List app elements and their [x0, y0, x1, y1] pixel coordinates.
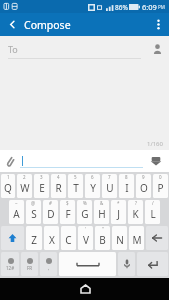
button[interactable]: FR — [21, 252, 38, 276]
staticText: @ — [31, 200, 36, 206]
button[interactable]: Z — [26, 226, 42, 250]
button[interactable]: ' — [78, 226, 93, 250]
button[interactable]: C — [61, 226, 76, 250]
staticText: 7 — [108, 174, 111, 180]
staticText: D — [47, 207, 55, 221]
staticText: H — [98, 207, 106, 221]
staticText: $ — [66, 200, 69, 206]
button[interactable]: M — [129, 226, 144, 250]
staticText: / — [152, 200, 154, 206]
staticText: * — [117, 200, 120, 206]
staticText: Q — [4, 181, 12, 195]
staticText: W — [20, 181, 30, 195]
staticText: B — [99, 233, 106, 247]
staticText: 9 — [142, 174, 145, 180]
button[interactable]: 1 — [1, 174, 15, 198]
button[interactable]: , — [40, 252, 57, 276]
staticText: 1/160 — [147, 140, 163, 148]
button[interactable]: More options — [147, 13, 169, 36]
button[interactable]: " — [95, 226, 110, 250]
button[interactable]: $ — [60, 200, 75, 224]
button[interactable]: Back — [0, 13, 24, 36]
staticText: # — [49, 200, 52, 206]
button[interactable]: Space — [59, 252, 116, 276]
staticText: C — [65, 233, 72, 247]
staticText: % — [83, 200, 87, 206]
staticText: V — [83, 233, 89, 247]
staticText: " — [102, 226, 104, 232]
staticText: K — [132, 207, 139, 221]
staticText: 0 — [159, 174, 162, 180]
staticText: ? — [135, 200, 137, 206]
button[interactable]: Send — [143, 150, 169, 172]
staticText: FR — [27, 265, 33, 271]
button[interactable]: Attach — [0, 150, 20, 172]
button[interactable]: 5 — [68, 174, 83, 198]
button[interactable]: & — [94, 200, 109, 224]
staticText: PM — [158, 4, 165, 10]
staticText: 4 — [57, 174, 60, 180]
button[interactable]: 2 — [17, 174, 32, 198]
staticText: 6:09 — [142, 2, 157, 12]
staticText: U — [106, 181, 114, 195]
button[interactable]: X — [44, 226, 59, 250]
staticText: M — [132, 233, 142, 247]
button[interactable]: * — [111, 200, 126, 224]
staticText: A — [13, 207, 20, 221]
staticText: 3 — [40, 174, 43, 180]
staticText: N — [116, 233, 124, 247]
staticText: P — [157, 181, 164, 195]
staticText: I — [125, 181, 129, 195]
button[interactable]: @ — [26, 200, 41, 224]
staticText: , — [48, 265, 50, 271]
staticText: O — [140, 181, 148, 195]
button[interactable]: / — [145, 200, 160, 224]
button[interactable]: Voice input — [118, 252, 135, 276]
button[interactable]: 4 — [51, 174, 66, 198]
button[interactable]: ? — [128, 200, 143, 224]
button[interactable]: 7 — [102, 174, 117, 198]
button[interactable]: N — [112, 226, 127, 250]
staticText: ' — [85, 226, 87, 232]
staticText: 5 — [74, 174, 77, 180]
button[interactable]: Backspace — [146, 226, 168, 250]
staticText: S — [31, 207, 37, 221]
staticText: R — [55, 181, 62, 195]
button[interactable]: Home — [74, 278, 96, 300]
staticText: 6 — [91, 174, 94, 180]
staticText: & — [100, 200, 104, 206]
staticText: J — [117, 207, 120, 221]
staticText: T — [73, 181, 79, 195]
staticText: 12# — [6, 265, 15, 271]
button[interactable]: ~ — [9, 200, 24, 224]
button[interactable]: # — [43, 200, 58, 224]
staticText: 1 — [7, 174, 10, 180]
button[interactable]: Add recipient — [145, 36, 169, 62]
staticText: G — [81, 207, 89, 221]
staticText: L — [150, 207, 156, 221]
button[interactable]: 12# — [1, 252, 19, 276]
staticText: Z — [31, 233, 37, 247]
button[interactable]: 3 — [34, 174, 49, 198]
staticText: ~ — [15, 200, 18, 206]
staticText: To — [8, 43, 18, 55]
button[interactable]: Shift — [1, 226, 24, 250]
button[interactable]: 8 — [119, 174, 134, 198]
staticText: Y — [90, 181, 96, 195]
button[interactable]: 9 — [136, 174, 151, 198]
button[interactable]: 0 — [153, 174, 168, 198]
staticText: F — [65, 207, 71, 221]
staticText: X — [49, 233, 55, 247]
button[interactable]: 6 — [85, 174, 100, 198]
staticText: 8 — [125, 174, 128, 180]
staticText: 86% — [115, 3, 128, 12]
staticText: 2 — [23, 174, 26, 180]
button[interactable]: Enter — [137, 252, 168, 276]
button[interactable]: % — [77, 200, 92, 224]
staticText: E — [39, 181, 45, 195]
staticText: Compose — [24, 18, 71, 32]
